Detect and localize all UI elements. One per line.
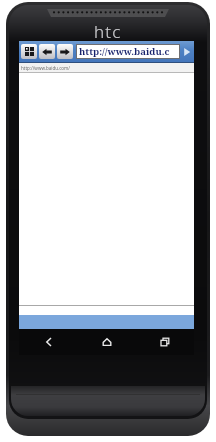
button[interactable]: http://www.baidu.c [77,45,179,58]
button[interactable]: Forward [57,44,73,59]
button[interactable]: Go [181,44,192,59]
button[interactable]: Back [19,329,78,355]
button[interactable]: Recent apps [136,329,194,355]
staticText: http://www.baidu.com/ [21,65,70,71]
staticText: http://www.baidu.c [79,45,170,58]
button[interactable]: Home [78,329,136,355]
button[interactable]: Back [39,44,55,59]
button[interactable]: Start menu [21,44,37,59]
staticText: htc [94,20,122,43]
